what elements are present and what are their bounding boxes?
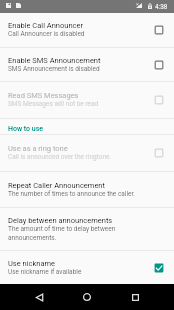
button[interactable]: Use nickname: [0, 251, 174, 284]
staticText: Use nickname: [8, 259, 56, 268]
other: Toggle: [154, 60, 164, 70]
button[interactable]: Use as a ring tone: [0, 135, 174, 171]
other: Toggle: [154, 95, 164, 105]
staticText: Use as a ring tone: [8, 144, 68, 153]
button[interactable]: Home: [73, 284, 100, 310]
staticText: Enable Call Announcer: [8, 21, 83, 30]
staticText: Use nickname if available: [8, 268, 82, 276]
staticText: SMS Announcement is disabled: [8, 65, 100, 73]
other: Toggle: [154, 263, 164, 273]
staticText: 4:38: [155, 3, 168, 11]
button[interactable]: Recent apps: [122, 284, 149, 310]
staticText: Repeat Caller Announcement: [8, 181, 105, 190]
staticText: SMS Messages will not be read: [8, 100, 99, 108]
staticText: Call is announced over the ringtone.: [8, 153, 112, 161]
staticText: How to use: [8, 125, 44, 133]
staticText: The number of times to announce the call…: [8, 190, 135, 198]
button[interactable]: Read SMS Messages: [0, 82, 174, 118]
button[interactable]: Enable Call Announcer: [0, 13, 174, 47]
button[interactable]: Enable SMS Announcement: [0, 48, 174, 81]
button[interactable]: Back: [26, 284, 53, 310]
other: Toggle: [154, 148, 164, 158]
staticText: Delay between announcements: [8, 216, 113, 225]
staticText: Call Announcer is disabled: [8, 30, 85, 38]
button[interactable]: Repeat Caller Announcement: [0, 172, 174, 207]
button[interactable]: Delay between announcements: [0, 208, 174, 250]
staticText: Enable SMS Announcement: [8, 56, 101, 65]
other: Toggle: [154, 25, 164, 35]
staticText: Read SMS Messages: [8, 91, 79, 100]
staticText: The amount of time to delay between anno…: [8, 225, 147, 241]
